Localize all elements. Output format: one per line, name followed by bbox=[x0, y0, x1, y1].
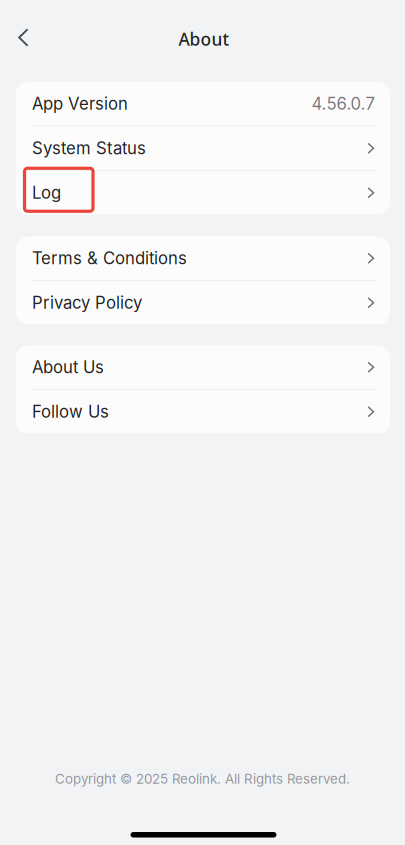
button[interactable]: System Status bbox=[16, 126, 390, 170]
staticText: Privacy Policy bbox=[32, 293, 142, 313]
staticText: Terms & Conditions bbox=[32, 248, 187, 268]
button[interactable]: Privacy Policy bbox=[16, 281, 390, 324]
staticText: App Version bbox=[32, 94, 128, 114]
staticText: Copyright © 2025 Reolink. All Rights Res… bbox=[55, 771, 350, 787]
button[interactable]: About Us bbox=[16, 345, 390, 389]
button[interactable]: Log bbox=[16, 171, 390, 214]
button[interactable]: Follow Us bbox=[16, 390, 390, 433]
button[interactable]: Terms & Conditions bbox=[16, 236, 390, 280]
staticText: System Status bbox=[32, 138, 146, 158]
staticText: Follow Us bbox=[32, 402, 109, 422]
button[interactable]: App Version bbox=[16, 82, 390, 125]
staticText: About bbox=[178, 27, 229, 50]
staticText: 4.56.0.7 bbox=[311, 94, 374, 114]
button[interactable]: Back bbox=[0, 9, 44, 65]
staticText: About Us bbox=[32, 357, 104, 377]
staticText: Log bbox=[32, 183, 61, 203]
